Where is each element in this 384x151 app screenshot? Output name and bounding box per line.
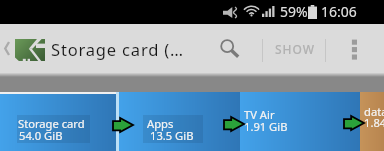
staticText: 16:06: [321, 2, 357, 21]
button[interactable]: [240, 92, 360, 151]
button[interactable]: SHOW: [264, 24, 325, 73]
button[interactable]: [119, 92, 240, 151]
staticText: 1.84: [364, 115, 384, 130]
staticText: 59%: [280, 2, 308, 21]
button[interactable]: [0, 92, 117, 151]
staticText: Storage card: [18, 116, 85, 131]
button[interactable]: Back: [0, 24, 16, 73]
staticText: data: [364, 104, 384, 119]
staticText: Storage card (…: [51, 38, 184, 60]
button[interactable]: More options: [338, 24, 372, 73]
button[interactable]: Search: [212, 24, 246, 73]
staticText: SHOW: [275, 41, 315, 57]
staticText: TV Air: [244, 107, 275, 122]
staticText: 13.5 GiB: [150, 128, 194, 143]
staticText: 54.0 GiB: [19, 128, 63, 143]
staticText: Apps: [147, 116, 174, 131]
button[interactable]: [360, 92, 384, 151]
staticText: 1.91 GiB: [244, 119, 288, 134]
